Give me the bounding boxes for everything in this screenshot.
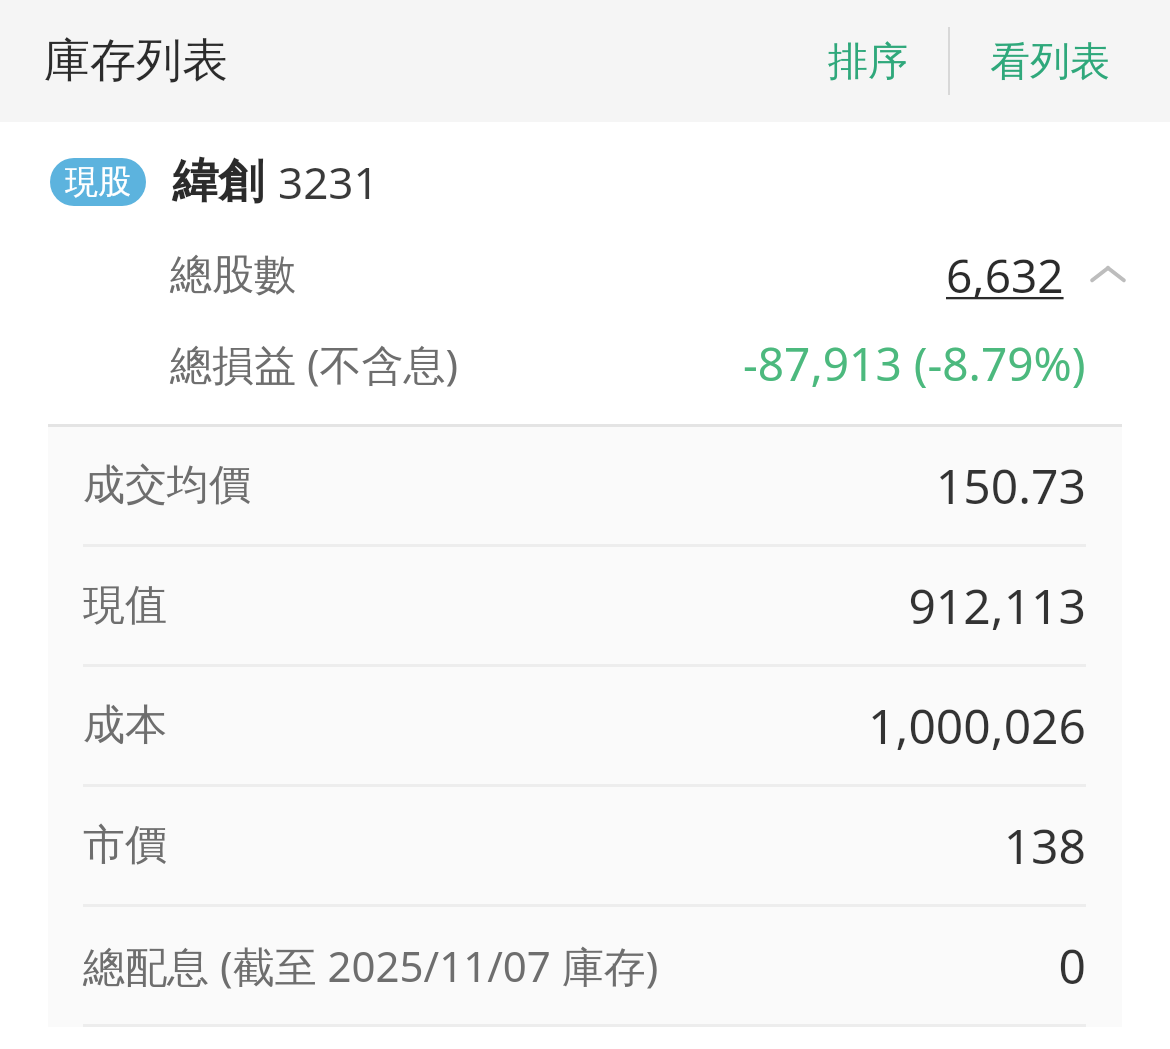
staticText: 庫存列表 — [44, 32, 228, 90]
staticText: 6,632 — [946, 244, 1064, 306]
button[interactable]: 市價 — [48, 787, 1122, 904]
staticText: 現值 — [83, 579, 167, 632]
staticText: 150.73 — [935, 453, 1086, 518]
staticText: 912,113 — [908, 573, 1086, 638]
staticText: 緯創 — [172, 153, 264, 211]
staticText: 1,000,026 — [868, 693, 1086, 758]
button[interactable]: 現股 — [0, 122, 1170, 424]
button[interactable]: 排序 — [814, 26, 922, 96]
staticText: 3231 — [278, 152, 379, 212]
staticText: 總損益 (不含息) — [170, 335, 459, 392]
other: Collapse — [1086, 253, 1130, 297]
staticText: 138 — [1003, 813, 1086, 878]
button[interactable]: 成交均價 — [48, 427, 1122, 544]
staticText: 市價 — [83, 819, 167, 872]
staticText: 0 — [1058, 933, 1086, 998]
button[interactable]: 總配息 (截至 2025/11/07 庫存) — [48, 907, 1122, 1024]
staticText: 看列表 — [990, 36, 1110, 86]
button[interactable]: 成本 — [48, 667, 1122, 784]
staticText: 成本 — [83, 699, 167, 752]
staticText: -87,913 (-8.79%) — [743, 332, 1086, 394]
button[interactable]: 現值 — [48, 547, 1122, 664]
staticText: 成交均價 — [83, 459, 251, 512]
button[interactable]: 看列表 — [976, 26, 1124, 96]
staticText: 總股數 — [170, 249, 296, 302]
staticText: 總配息 (截至 2025/11/07 庫存) — [83, 937, 659, 994]
staticText: 排序 — [828, 36, 908, 86]
staticText: 現股 — [65, 161, 131, 203]
